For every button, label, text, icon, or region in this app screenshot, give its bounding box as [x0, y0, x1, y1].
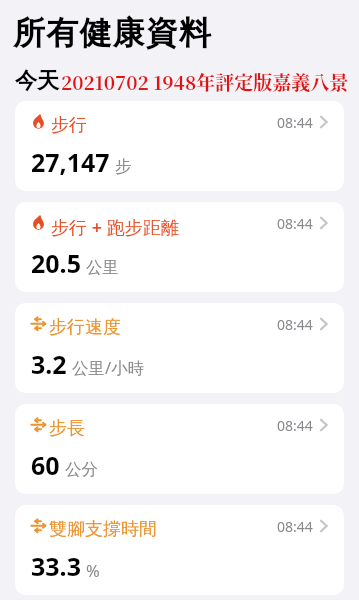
- staticText: 步: [115, 156, 132, 177]
- button[interactable]: 步行速度: [15, 303, 344, 393]
- staticText: 公里/小時: [72, 356, 145, 379]
- staticText: %: [86, 559, 100, 581]
- staticText: 公分: [65, 459, 98, 480]
- staticText: 60: [31, 448, 60, 482]
- staticText: 3.2: [31, 347, 67, 381]
- staticText: 20210702 1948年評定版嘉義八景: [61, 68, 349, 95]
- button[interactable]: 步長: [15, 404, 344, 494]
- button[interactable]: 步行: [15, 101, 344, 191]
- staticText: 27,147: [31, 145, 110, 179]
- staticText: 08:44: [277, 214, 313, 233]
- staticText: 步行: [51, 114, 87, 137]
- staticText: 步行速度: [49, 316, 121, 339]
- staticText: 08:44: [277, 315, 313, 334]
- staticText: 步長: [49, 417, 85, 440]
- staticText: 20.5: [31, 246, 81, 280]
- staticText: 步行 + 跑步距離: [51, 215, 179, 240]
- staticText: 雙腳支撐時間: [49, 518, 157, 541]
- staticText: 所有健康資料: [13, 13, 213, 53]
- button[interactable]: 步行 + 跑步距離: [15, 202, 344, 292]
- staticText: 08:44: [277, 416, 313, 435]
- staticText: 今天: [15, 67, 59, 95]
- button[interactable]: 雙腳支撐時間: [15, 505, 344, 595]
- staticText: 08:44: [277, 113, 313, 132]
- staticText: 08:44: [277, 517, 313, 536]
- staticText: 公里: [86, 257, 119, 278]
- staticText: 33.3: [31, 549, 81, 583]
